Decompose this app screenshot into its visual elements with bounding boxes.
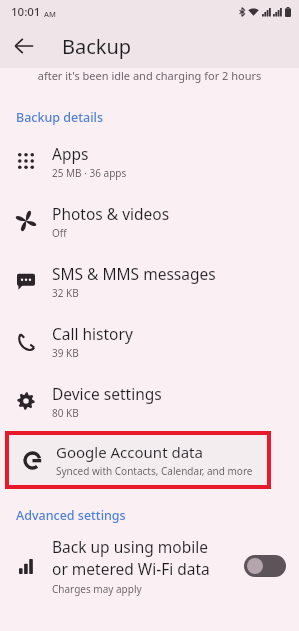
button[interactable]: Photos & videos [0,191,299,251]
staticText: 10:01 [11,4,41,20]
button[interactable]: Device settings [0,371,299,431]
staticText: 32 KB [52,286,79,300]
staticText: Back up using mobile [52,536,208,557]
staticText: Backup details [16,109,103,126]
button[interactable]: Call history [0,311,299,371]
staticText: Backup [62,33,132,60]
staticText: Synced with Contacts, Calendar, and more [56,464,253,478]
staticText: Google Account data [56,442,203,462]
staticText: after it's been idle and charging for 2 … [26,68,273,83]
staticText: Call history [52,323,133,344]
staticText: Charges may apply [52,582,142,596]
button[interactable]: Back [5,27,43,65]
button[interactable]: Back up using mobile data toggle [244,555,286,577]
staticText: 80 KB [52,406,79,420]
staticText: AM [44,9,56,19]
button[interactable]: SMS & MMS messages [0,251,299,311]
staticText: Apps [52,143,89,164]
button[interactable]: Apps [0,131,299,191]
staticText: Device settings [52,383,162,404]
staticText: SMS & MMS messages [52,263,216,284]
staticText: Photos & videos [52,203,170,224]
staticText: 25 MB · 36 apps [52,166,127,180]
staticText: Advanced settings [16,507,126,524]
staticText: Off [52,226,67,240]
button[interactable]: Back up using mobile [0,529,299,603]
staticText: 39 KB [52,346,79,360]
staticText: or metered Wi-Fi data [52,558,210,579]
button[interactable]: Google Account data [9,435,267,485]
